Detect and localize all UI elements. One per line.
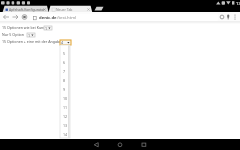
- staticText: /test.html: [57, 15, 77, 21]
- staticText: 4: [61, 40, 64, 45]
- staticText: 11: [63, 105, 68, 110]
- staticText: Apfelsaft-Konfigurator: [9, 7, 45, 12]
- button[interactable]: New tab: [93, 6, 105, 12]
- staticText: 9: [63, 87, 66, 92]
- staticText: 5: [63, 51, 66, 56]
- button[interactable]: 8: [63, 78, 70, 87]
- button[interactable]: Menu: [231, 13, 239, 21]
- staticText: 6: [63, 60, 66, 65]
- button[interactable]: Back: [90, 139, 104, 150]
- staticText: 15 Optionen wie bei Kunden: [2, 25, 50, 30]
- button[interactable]: Recents: [137, 139, 151, 150]
- button[interactable]: Bookmark: [218, 13, 226, 21]
- button[interactable]: Neuer Tab: [49, 6, 92, 12]
- button[interactable]: 14: [63, 132, 70, 141]
- button[interactable]: Back: [2, 13, 10, 21]
- button[interactable]: 7: [63, 69, 70, 78]
- button[interactable]: 13: [63, 123, 70, 132]
- staticText: 10: [63, 96, 68, 101]
- button[interactable]: Voice search: [224, 13, 232, 21]
- button[interactable]: Reload: [20, 13, 28, 21]
- staticText: 8: [63, 78, 66, 83]
- button[interactable]: 6: [63, 60, 70, 69]
- staticText: 1: [28, 33, 31, 37]
- button[interactable]: 10: [63, 96, 70, 105]
- staticText: 7: [63, 69, 66, 74]
- staticText: 15 Optionen + eine mit der Angabe Ob: [2, 39, 68, 44]
- button[interactable]: 1: [44, 26, 52, 30]
- staticText: Nur 5 Option: [2, 32, 24, 37]
- button[interactable]: 5: [63, 51, 70, 60]
- button[interactable]: denic.de: [30, 14, 218, 21]
- button[interactable]: 9: [63, 87, 70, 96]
- button[interactable]: Forward: [11, 13, 19, 21]
- button[interactable]: 12: [63, 114, 70, 123]
- button[interactable]: Home: [113, 139, 127, 150]
- staticText: 12: [63, 114, 68, 119]
- button[interactable]: 1: [27, 33, 35, 37]
- button[interactable]: 11: [63, 105, 70, 114]
- button[interactable]: Apfelsaft-Konfigurator: [3, 6, 48, 12]
- staticText: denic.de: [39, 15, 57, 21]
- staticText: 1: [45, 26, 48, 30]
- staticText: 13:45: [236, 1, 240, 7]
- button[interactable]: 4: [60, 40, 71, 45]
- staticText: Neuer Tab: [56, 7, 73, 12]
- staticText: 14: [63, 132, 68, 137]
- staticText: 13: [63, 123, 68, 128]
